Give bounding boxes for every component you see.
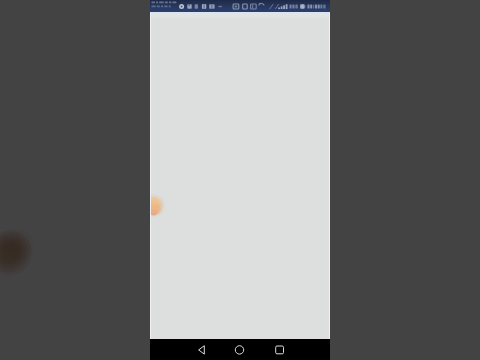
button[interactable]: Add: [150, 196, 163, 215]
button[interactable]: Home: [220, 339, 257, 360]
button[interactable]: System status bar: [150, 0, 330, 14]
button[interactable]: Recent apps: [257, 339, 294, 360]
button[interactable]: Back: [150, 339, 220, 360]
